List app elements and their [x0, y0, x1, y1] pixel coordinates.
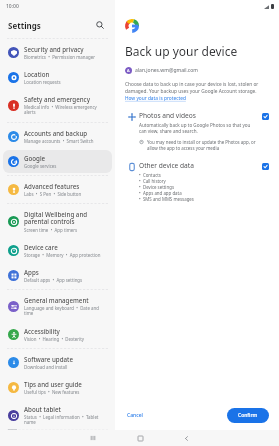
- staticText: Automatically back up to Google Photos s…: [139, 122, 258, 134]
- staticText: Choose data to back up in case your devi…: [125, 81, 269, 95]
- staticText: Manage accounts • Smart Switch: [24, 138, 94, 144]
- staticText: Safety and emergency: [24, 95, 90, 103]
- button[interactable]: Software update: [3, 351, 112, 374]
- staticText: Medical info • Wireless emergency alerts: [24, 104, 108, 116]
- staticText: Digital Wellbeing and parental controls: [24, 210, 108, 226]
- staticText: • Apps and app data: [139, 190, 182, 196]
- button[interactable]: Back: [180, 432, 192, 444]
- staticText: About tablet: [24, 405, 61, 413]
- staticText: Apps: [24, 268, 39, 276]
- staticText: Other device data: [139, 161, 194, 170]
- staticText: Labs • S Pen • Side button: [24, 191, 82, 197]
- staticText: Useful tips • New features: [24, 389, 80, 395]
- button[interactable]: Search settings: [93, 18, 107, 32]
- staticText: Software update: [24, 355, 73, 363]
- staticText: Tips and user guide: [24, 380, 82, 388]
- button[interactable]: Digital Wellbeing and parental controls: [3, 206, 112, 237]
- staticText: Status • Legal information • Tablet name: [24, 414, 108, 425]
- staticText: alan.jones.wm@gmail.com: [135, 67, 198, 74]
- button[interactable]: Confirm: [227, 408, 269, 423]
- button[interactable]: A: [125, 67, 198, 74]
- button[interactable]: Advanced features: [3, 178, 112, 201]
- staticText: General management: [24, 296, 89, 304]
- button[interactable]: Other device data: [125, 161, 269, 202]
- staticText: Language and keyboard • Date and time: [24, 305, 108, 317]
- staticText: Default apps • App settings: [24, 277, 83, 283]
- button[interactable]: Toggle Photos and videos backup: [262, 113, 269, 120]
- staticText: You may need to install or update the Ph…: [147, 139, 258, 151]
- button[interactable]: How your data is protected: [125, 95, 186, 102]
- staticText: • Call history: [139, 178, 166, 184]
- button[interactable]: Security and privacy: [3, 41, 112, 64]
- staticText: Security and privacy: [24, 45, 84, 53]
- staticText: Cancel: [127, 412, 143, 419]
- staticText: • Device settings: [139, 184, 175, 190]
- button[interactable]: Tips and user guide: [3, 376, 112, 399]
- staticText: Google: [24, 154, 46, 162]
- staticText: Advanced features: [24, 182, 80, 190]
- button[interactable]: Apps: [3, 264, 112, 287]
- staticText: A: [127, 68, 130, 73]
- button[interactable]: Accessibility: [3, 323, 112, 346]
- staticText: 10:00: [6, 3, 19, 10]
- staticText: Vision • Hearing • Dexterity: [24, 336, 85, 342]
- staticText: Back up your device: [125, 43, 238, 59]
- button[interactable]: Safety and emergency: [3, 91, 112, 120]
- button[interactable]: Accounts and backup: [3, 125, 112, 148]
- button[interactable]: Google: [3, 150, 112, 173]
- button[interactable]: Device care: [3, 239, 112, 262]
- button[interactable]: Location: [3, 66, 112, 89]
- staticText: Accessibility: [24, 327, 60, 335]
- staticText: Download and install: [24, 364, 68, 370]
- staticText: Settings: [8, 20, 41, 31]
- staticText: Location requests: [24, 79, 61, 85]
- button[interactable]: Recent apps: [87, 432, 99, 444]
- staticText: Location: [24, 70, 50, 78]
- button[interactable]: Photos and videos: [125, 111, 269, 151]
- button[interactable]: About tablet: [3, 401, 112, 429]
- staticText: Storage • Memory • App protection: [24, 252, 101, 258]
- staticText: Google services: [24, 163, 57, 169]
- button[interactable]: Toggle Other device data backup: [262, 163, 269, 170]
- staticText: Confirm: [238, 412, 258, 419]
- staticText: Photos and videos: [139, 111, 196, 120]
- button[interactable]: Home: [134, 432, 146, 444]
- staticText: Biometrics • Permission manager: [24, 54, 95, 60]
- staticText: Accounts and backup: [24, 129, 88, 137]
- staticText: Device care: [24, 243, 58, 251]
- button[interactable]: General management: [3, 292, 112, 321]
- staticText: • Contacts: [139, 172, 161, 178]
- staticText: • SMS and MMS messages: [139, 196, 194, 202]
- staticText: Screen time • App timers: [24, 227, 78, 233]
- button[interactable]: Cancel: [125, 410, 145, 421]
